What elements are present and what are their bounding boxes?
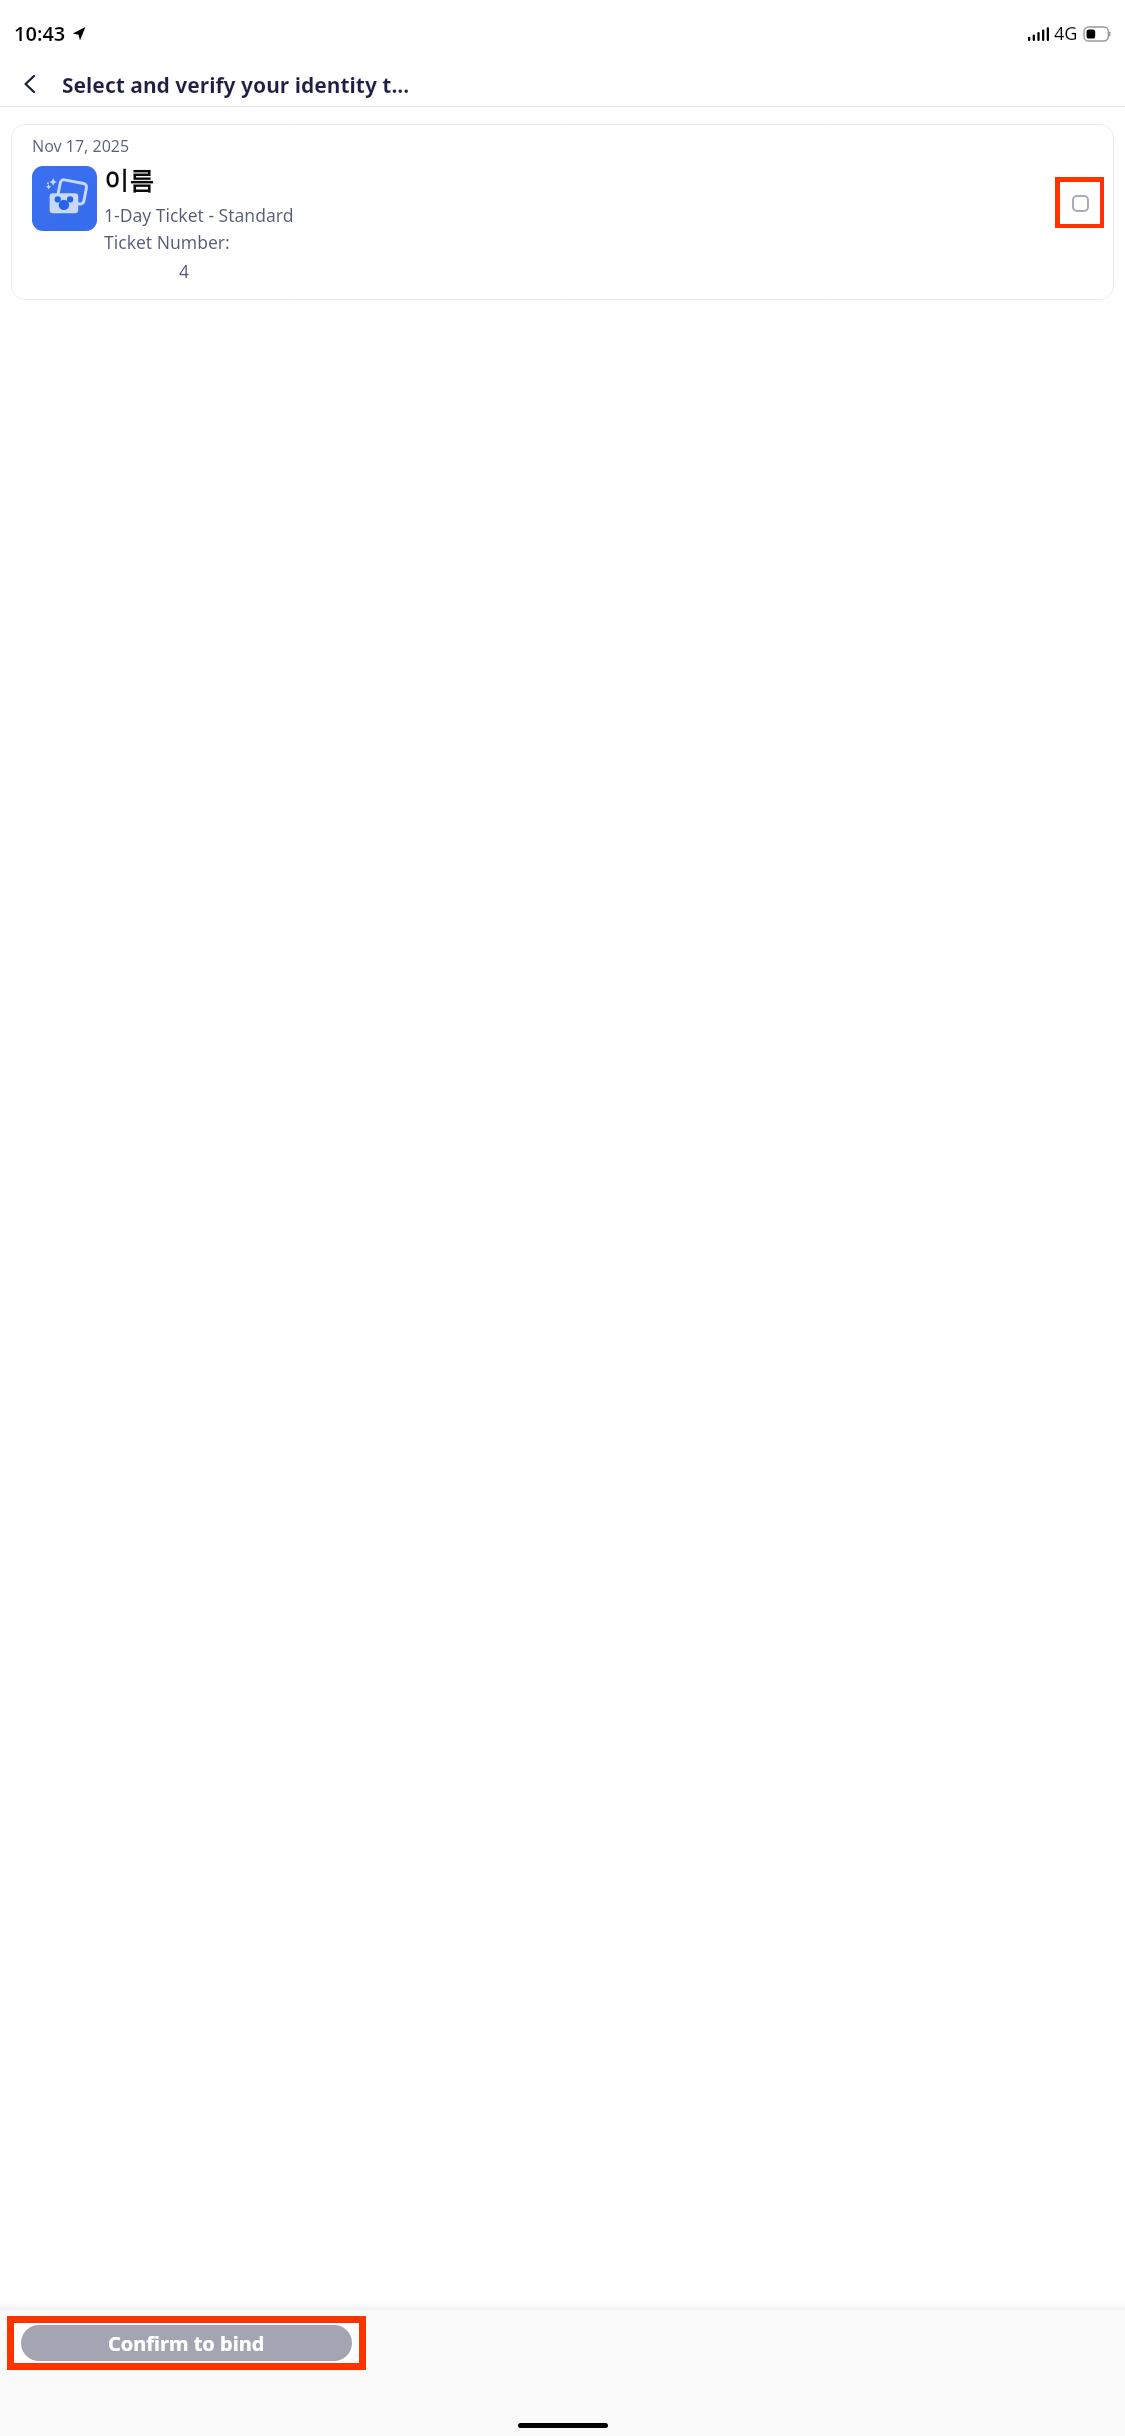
- button[interactable]: Confirm to bind: [21, 2325, 352, 2361]
- staticText: Select and verify your identity t...: [62, 71, 410, 100]
- staticText: 1-Day Ticket - Standard: [104, 203, 294, 227]
- staticText: 10:43: [14, 20, 66, 47]
- button[interactable]: Back: [8, 62, 52, 106]
- staticText: Ticket Number:: [104, 230, 230, 254]
- button[interactable]: Select ticket: [1055, 177, 1104, 228]
- staticText: Nov 17, 2025: [32, 135, 130, 157]
- button[interactable]: Nov 17, 2025: [11, 124, 1114, 300]
- staticText: 4G: [1054, 21, 1078, 46]
- staticText: 4: [179, 259, 190, 283]
- staticText: 이름: [104, 165, 154, 196]
- staticText: Confirm to bind: [108, 2330, 265, 2357]
